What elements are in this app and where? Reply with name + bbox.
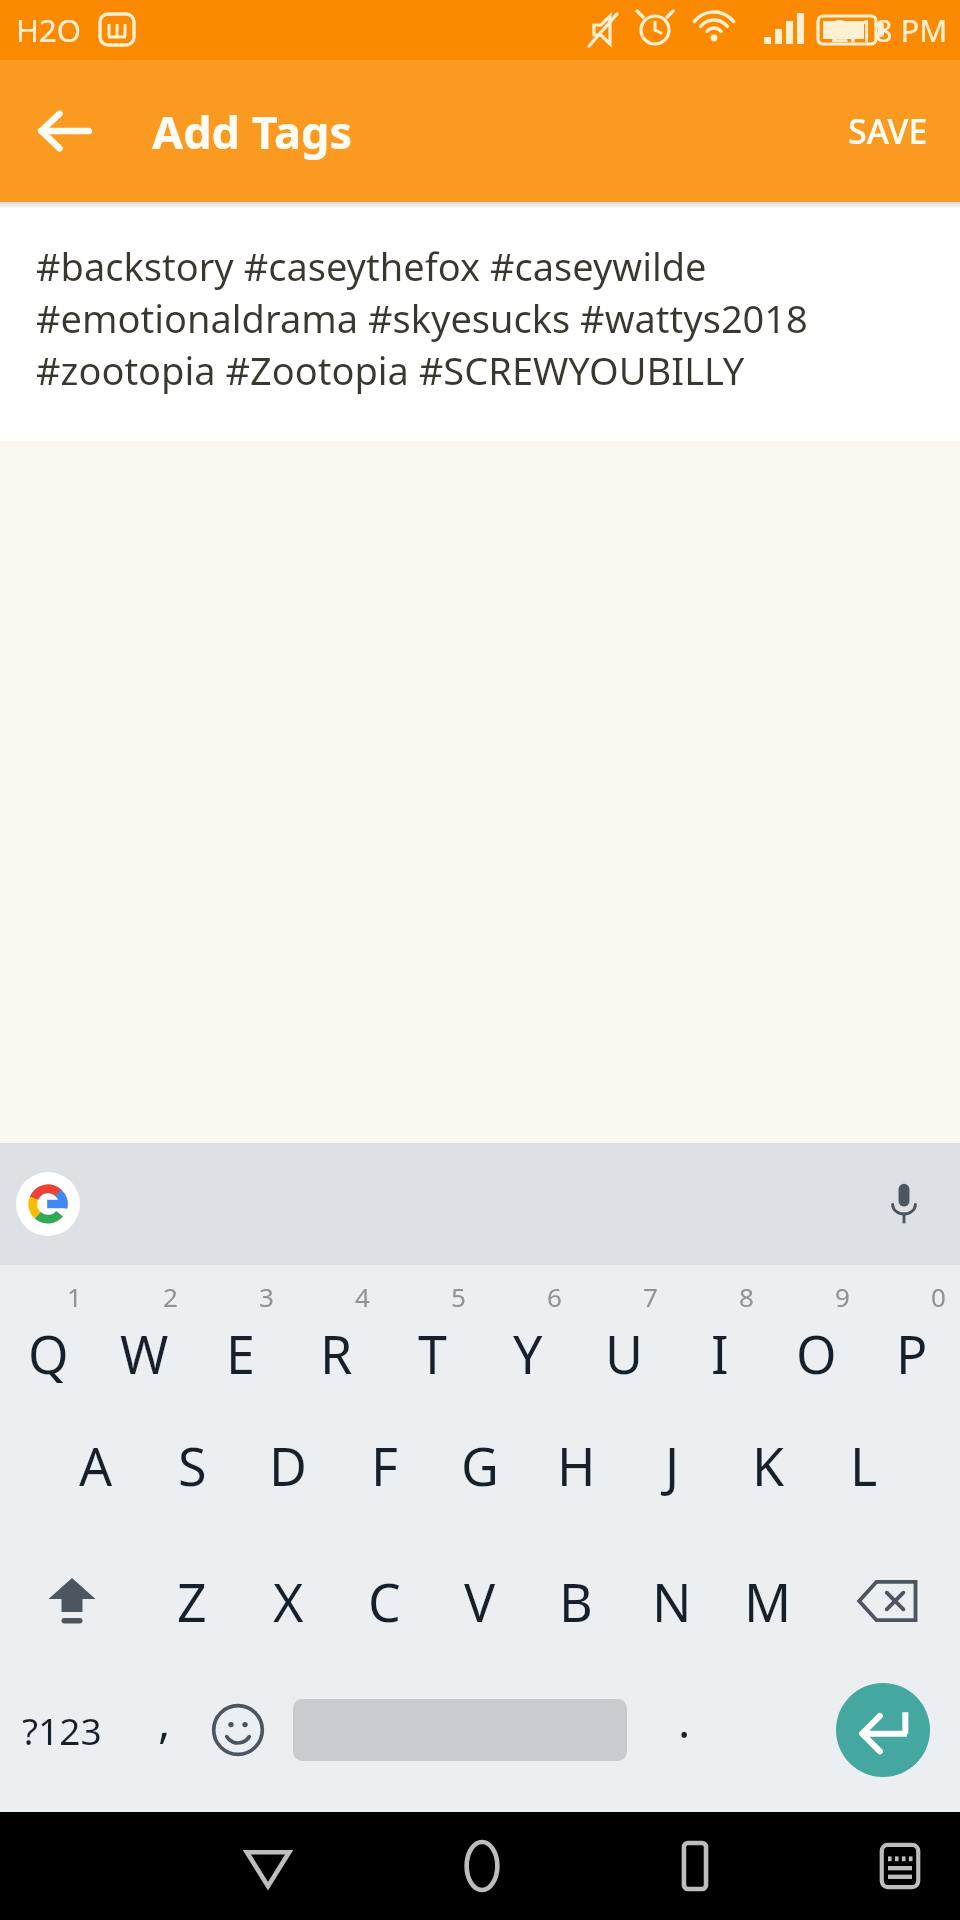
staticText: U [605,1318,644,1389]
button[interactable]: Hide keyboard [840,1812,960,1920]
button[interactable]: C [336,1541,432,1661]
staticText: 4 [355,1279,370,1314]
staticText: C [368,1566,401,1637]
staticText: 2:18 PM [831,9,948,51]
staticText: B [559,1566,593,1637]
button[interactable]: Z [144,1541,240,1661]
staticText: A [79,1430,113,1501]
staticText: 5 [451,1279,466,1314]
staticText: V [464,1566,496,1637]
staticText: ?123 [22,1705,102,1755]
staticText: M [744,1566,792,1637]
staticText: SAVE [848,108,928,154]
button[interactable]: Backspace [816,1541,960,1661]
button[interactable]: L [816,1405,912,1525]
staticText: 3 [259,1279,274,1314]
button[interactable]: D [240,1405,336,1525]
button[interactable]: Voice input [870,1170,938,1238]
staticText: I [711,1318,729,1389]
staticText: . [678,1689,691,1752]
staticText: 8 [739,1279,754,1314]
staticText: N [652,1566,692,1637]
button[interactable]: 6 [480,1279,576,1399]
staticText: 0 [931,1279,946,1314]
button[interactable]: F [336,1405,432,1525]
staticText: W [120,1318,169,1389]
button[interactable]: 7 [576,1279,672,1399]
staticText: , [158,1689,171,1752]
staticText: H [557,1430,596,1501]
staticText: 9 [835,1279,850,1314]
staticText: O [796,1318,837,1389]
button[interactable]: 3 [192,1279,288,1399]
staticText: Add Tags [152,101,353,162]
staticText: Z [177,1566,207,1637]
staticText: L [850,1430,878,1501]
button[interactable]: J [624,1405,720,1525]
staticText: P [896,1318,928,1389]
button[interactable]: M [720,1541,816,1661]
button[interactable]: Recents [635,1812,755,1920]
button[interactable]: 1 [0,1279,96,1399]
staticText: Q [28,1318,69,1389]
button[interactable]: V [432,1541,528,1661]
button[interactable]: Shift [0,1541,144,1661]
button[interactable]: A [48,1405,144,1525]
staticText: G [461,1430,499,1501]
staticText: 2 [163,1279,178,1314]
button[interactable]: 8 [672,1279,768,1399]
button[interactable]: . [646,1665,722,1795]
staticText: X [273,1566,304,1637]
staticText: T [418,1318,447,1389]
button[interactable]: 9 [768,1279,864,1399]
button[interactable]: X [240,1541,336,1661]
button[interactable]: 4 [288,1279,384,1399]
button[interactable]: N [624,1541,720,1661]
button[interactable]: Home [422,1812,542,1920]
staticText: F [371,1430,398,1501]
staticText: H2O [16,9,81,51]
staticText: E [226,1318,255,1389]
button[interactable]: Google [16,1172,80,1236]
staticText: J [665,1430,680,1501]
staticText: 6 [547,1279,562,1314]
button[interactable]: Back [208,1812,328,1920]
staticText: D [269,1430,307,1501]
staticText: K [752,1430,785,1501]
button[interactable]: G [432,1405,528,1525]
button[interactable]: Back [20,86,110,176]
button[interactable]: #backstory #caseythefox #caseywilde [36,240,808,396]
staticText: S [178,1430,207,1501]
staticText: #zootopia #Zootopia #SCREWYOUBILLY [36,344,745,396]
button[interactable]: S [144,1405,240,1525]
button[interactable]: SAVE [828,90,948,172]
button[interactable]: K [720,1405,816,1525]
staticText: #emotionaldrama #skyesucks #wattys2018 [36,292,808,344]
staticText: 1 [67,1279,82,1314]
button[interactable]: ?123 [6,1665,118,1795]
button[interactable]: Enter [836,1683,930,1777]
button[interactable]: , [126,1665,202,1795]
button[interactable]: H [528,1405,624,1525]
staticText: 7 [643,1279,658,1314]
staticText: Y [513,1318,543,1389]
button[interactable]: 2 [96,1279,192,1399]
staticText: R [320,1318,353,1389]
button[interactable]: B [528,1541,624,1661]
staticText: #backstory #caseythefox #caseywilde [36,240,707,292]
button[interactable]: Emoji [198,1665,278,1795]
button[interactable]: 5 [384,1279,480,1399]
button[interactable]: 0 [864,1279,960,1399]
